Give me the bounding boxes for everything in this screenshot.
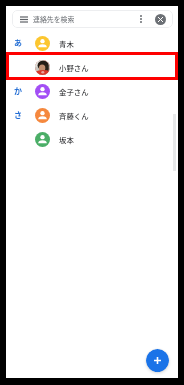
staticText: 小野さん: [59, 62, 89, 73]
button[interactable]: 小野さん: [6, 55, 178, 79]
button[interactable]: 坂本: [6, 127, 178, 151]
button[interactable]: か: [6, 79, 178, 103]
staticText: さ: [14, 109, 22, 121]
button[interactable]: Create new contact: [146, 349, 169, 372]
staticText: 坂本: [59, 134, 74, 145]
staticText: 連絡先を検索: [33, 14, 75, 24]
button[interactable]: さ: [6, 103, 178, 127]
button[interactable]: More options: [135, 10, 147, 28]
staticText: あ: [14, 37, 22, 49]
staticText: 青木: [59, 38, 74, 49]
staticText: 金子さん: [59, 86, 89, 97]
staticText: 斉藤くん: [59, 110, 89, 121]
button[interactable]: Account: [155, 14, 166, 25]
button[interactable]: あ: [6, 31, 178, 55]
staticText: か: [14, 85, 22, 97]
button[interactable]: Open navigation menu: [16, 10, 32, 28]
